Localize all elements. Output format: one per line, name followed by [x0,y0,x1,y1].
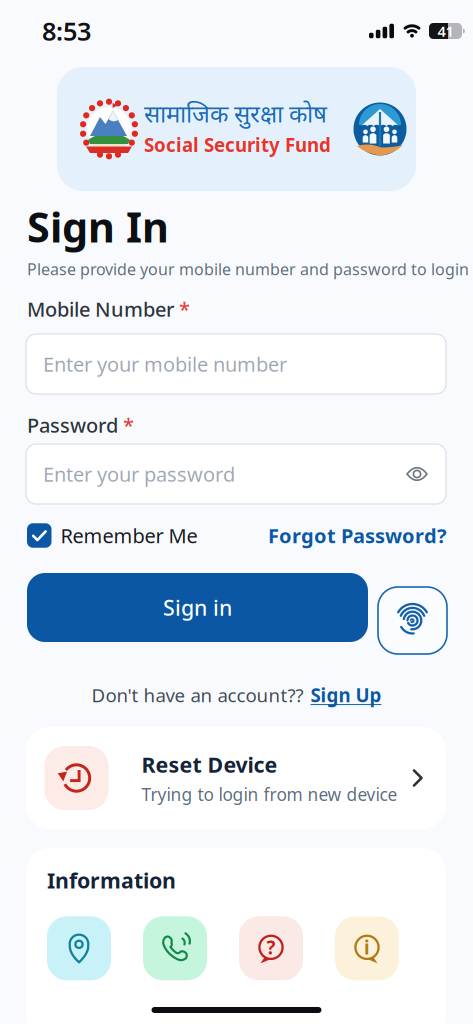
staticText: Trying to login from new device [141,783,397,806]
staticText: सामाजिक सुरक्षा कोष [144,101,327,132]
button[interactable]: Sign in with fingerprint [378,587,447,654]
button[interactable]: Contact [143,916,207,980]
staticText: Forgot Password? [268,522,447,549]
staticText: Sign Up [310,683,381,707]
staticText: Remember Me [60,522,197,549]
button[interactable]: Sign Up [310,683,381,707]
button[interactable]: Remember Me [27,522,197,549]
staticText: Information [47,866,176,894]
staticText: Don't have an account?? [91,683,303,707]
staticText: Reset Device [141,750,277,779]
button[interactable]: Sign in [27,573,368,642]
button[interactable]: Reset Device [26,727,446,829]
staticText: 41 [437,21,453,41]
staticText: Please provide your mobile number and pa… [27,258,469,280]
staticText: Password [27,412,118,438]
staticText: Sign In [27,199,169,254]
staticText: i [364,935,370,960]
staticText: Enter your password [43,461,235,487]
staticText: Sign in [163,593,232,622]
button[interactable]: About [335,916,399,980]
staticText: * [123,412,134,438]
staticText: ? [266,935,275,960]
staticText: Enter your mobile number [43,351,287,377]
staticText: Social Security Fund [144,132,331,157]
button[interactable]: Forgot Password? [268,522,447,549]
staticText: * [179,296,190,322]
button[interactable]: FAQ [239,916,303,980]
staticText: Mobile Number [27,296,174,322]
staticText: 8:53 [42,14,91,48]
button[interactable]: Show password [406,466,446,482]
button[interactable]: Locations [47,916,111,980]
